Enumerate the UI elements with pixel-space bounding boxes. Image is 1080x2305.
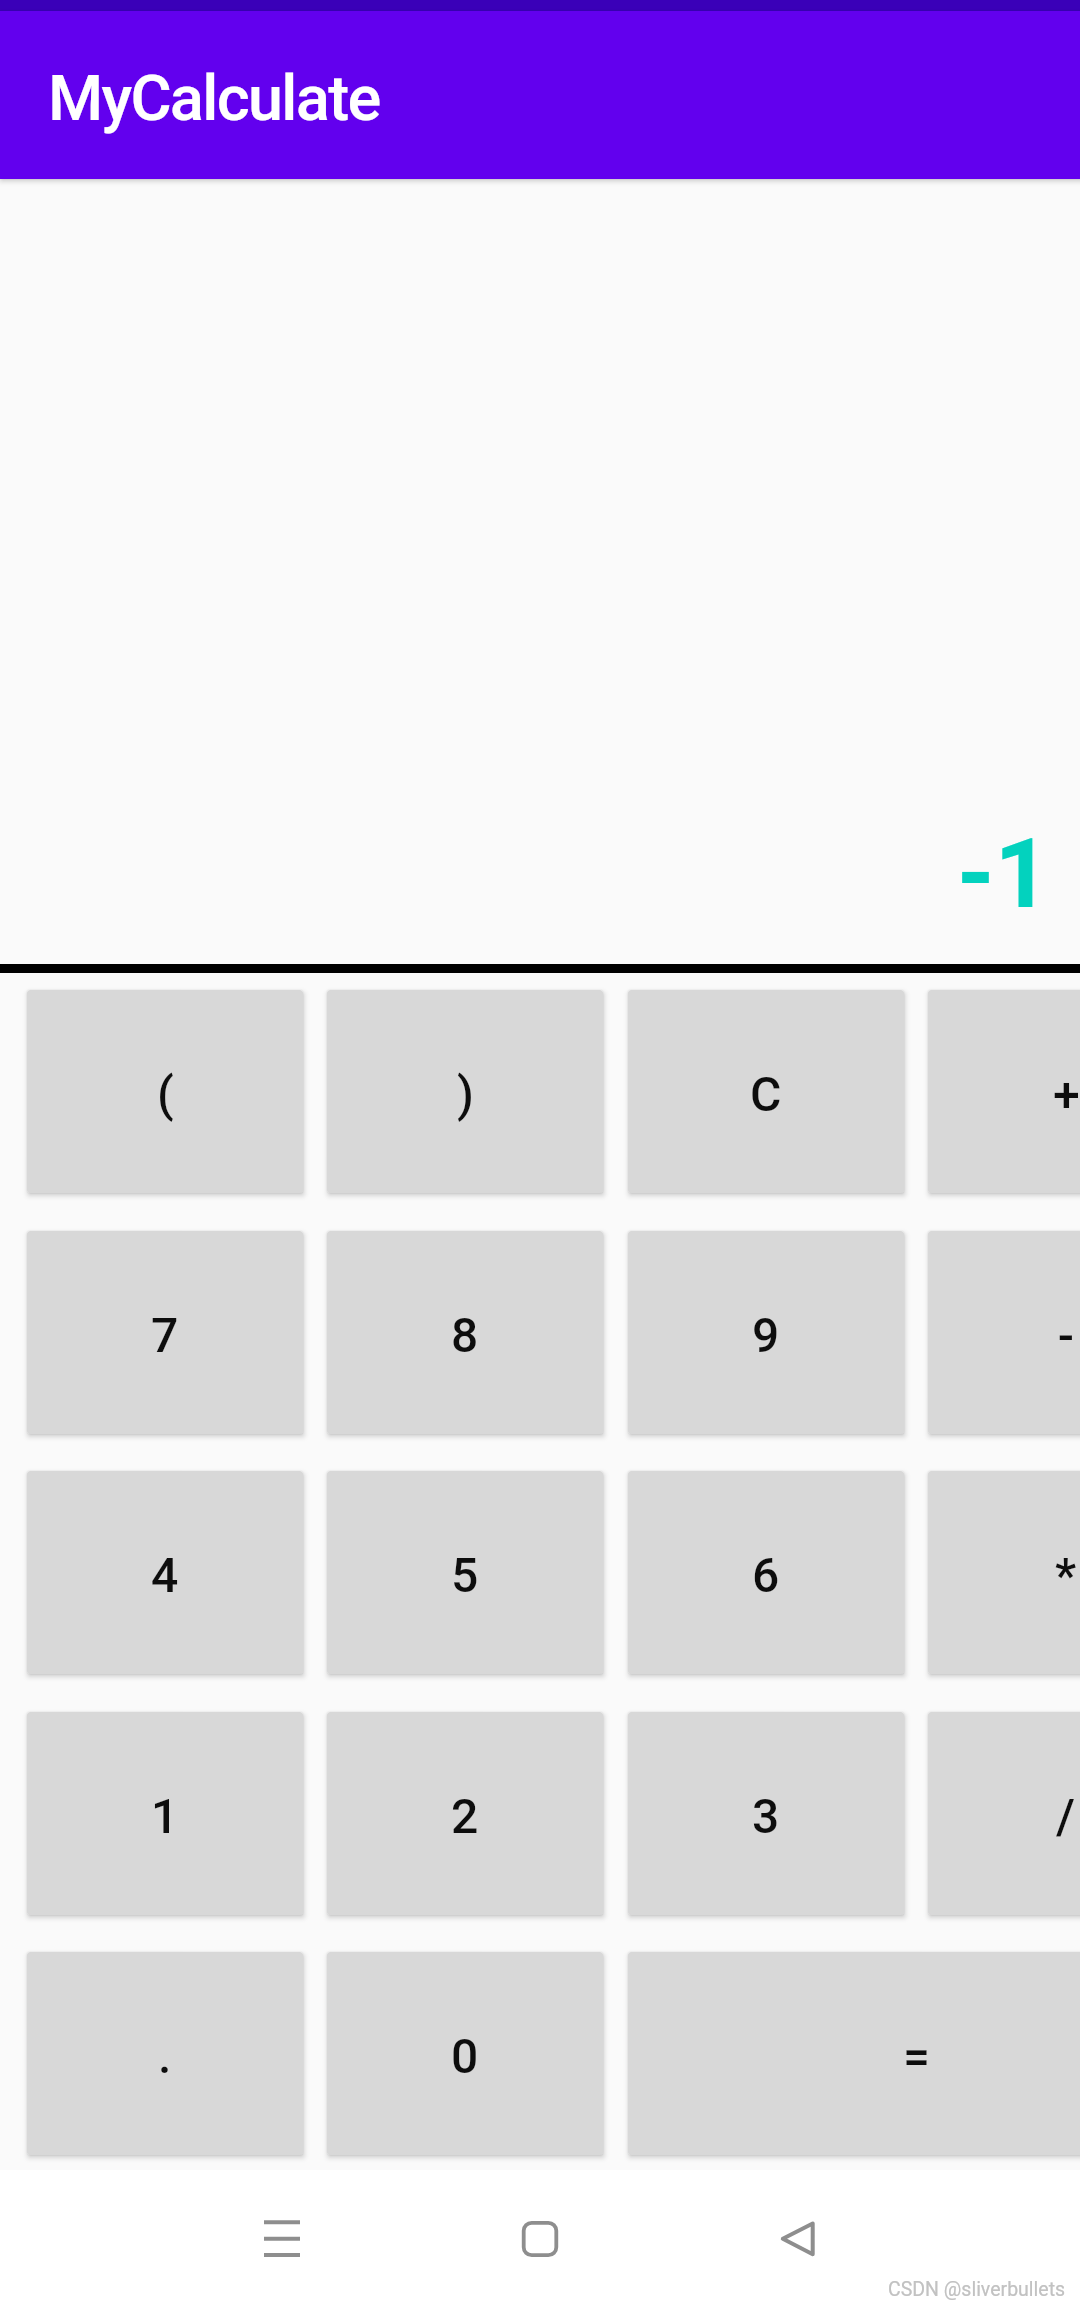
button[interactable]: 6: [628, 1471, 904, 1674]
staticText: +: [1053, 1066, 1080, 1122]
button[interactable]: (: [27, 990, 303, 1193]
button[interactable]: 1: [27, 1712, 303, 1915]
staticText: .: [158, 2028, 172, 2084]
staticText: C: [750, 1066, 782, 1122]
staticText: -1: [957, 817, 1050, 930]
staticText: MyCalculate: [48, 62, 380, 136]
button[interactable]: Home: [470, 2170, 610, 2305]
button[interactable]: C: [628, 990, 904, 1193]
staticText: 5: [451, 1547, 479, 1603]
staticText: /: [1056, 1788, 1076, 1844]
staticText: 6: [752, 1547, 780, 1603]
button[interactable]: -: [928, 1231, 1080, 1434]
button[interactable]: =: [628, 1952, 1080, 2155]
button[interactable]: 0: [327, 1952, 603, 2155]
staticText: -: [1058, 1307, 1074, 1363]
staticText: (: [157, 1066, 174, 1122]
staticText: 7: [151, 1307, 179, 1363]
staticText: =: [903, 2028, 930, 2084]
button[interactable]: 2: [327, 1712, 603, 1915]
staticText: 1: [151, 1788, 179, 1844]
button[interactable]: .: [27, 1952, 303, 2155]
staticText: ): [457, 1066, 474, 1122]
button[interactable]: Back: [728, 2170, 868, 2305]
button[interactable]: /: [928, 1712, 1080, 1915]
button[interactable]: *: [928, 1471, 1080, 1674]
button[interactable]: 8: [327, 1231, 603, 1434]
staticText: CSDN @sliverbullets: [888, 2278, 1066, 2301]
staticText: *: [1055, 1547, 1077, 1603]
button[interactable]: 7: [27, 1231, 303, 1434]
button[interactable]: 9: [628, 1231, 904, 1434]
staticText: 2: [451, 1788, 479, 1844]
staticText: 8: [451, 1307, 479, 1363]
button[interactable]: ): [327, 990, 603, 1193]
button[interactable]: 5: [327, 1471, 603, 1674]
button[interactable]: +: [928, 990, 1080, 1193]
button[interactable]: 3: [628, 1712, 904, 1915]
staticText: 9: [752, 1307, 780, 1363]
button[interactable]: 4: [27, 1471, 303, 1674]
staticText: 4: [151, 1547, 179, 1603]
button[interactable]: Recent apps: [212, 2170, 352, 2305]
staticText: 3: [752, 1788, 780, 1844]
staticText: 0: [451, 2028, 479, 2084]
